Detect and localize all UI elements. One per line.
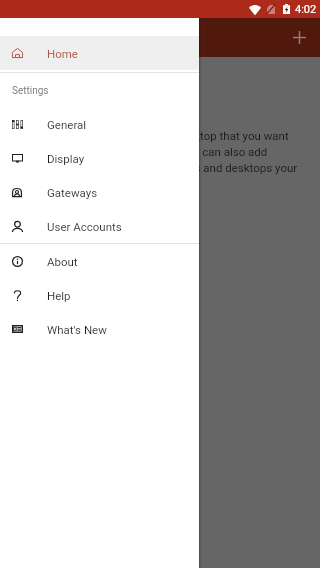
staticText: Home <box>47 47 78 60</box>
button[interactable]: About <box>0 244 199 278</box>
button[interactable]: What's New <box>0 312 199 346</box>
staticText: About <box>47 255 78 268</box>
staticText: Help <box>47 289 71 302</box>
button[interactable]: Help <box>0 278 199 312</box>
button[interactable]: Add desktop <box>283 21 316 54</box>
staticText: Settings <box>12 85 49 97</box>
button[interactable]: Home <box>0 36 199 70</box>
staticText: General <box>47 118 87 131</box>
button[interactable]: Gateways <box>0 175 199 209</box>
button[interactable]: User Accounts <box>0 209 199 243</box>
staticText: User Accounts <box>47 220 122 233</box>
button[interactable]: General <box>0 107 199 141</box>
staticText: Gateways <box>47 186 98 199</box>
staticText: What's New <box>47 323 107 336</box>
button[interactable]: Display <box>0 141 199 175</box>
staticText: Display <box>47 152 85 165</box>
staticText: To get started, add any remote desktop t… <box>17 129 298 190</box>
staticText: 4:02 <box>295 3 317 16</box>
